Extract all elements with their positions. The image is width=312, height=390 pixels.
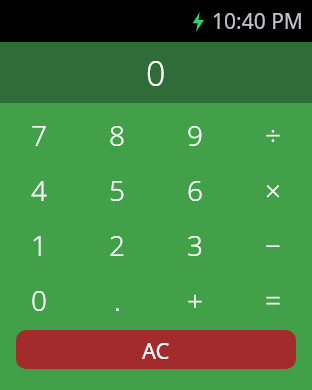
button[interactable]: 0 (0, 42, 312, 103)
staticText: 5 (109, 171, 125, 209)
button[interactable]: ÷ (234, 107, 312, 162)
button[interactable]: − (234, 217, 312, 272)
button[interactable]: 9 (156, 107, 234, 162)
staticText: = (265, 281, 281, 319)
staticText: 0 (31, 281, 47, 319)
staticText: 2 (109, 226, 125, 264)
staticText: + (187, 281, 203, 319)
staticText: 8 (109, 116, 125, 154)
staticText: 3 (187, 226, 203, 264)
button[interactable]: AC (16, 330, 296, 369)
button[interactable]: 6 (156, 162, 234, 217)
button[interactable]: . (78, 272, 156, 327)
staticText: 6 (187, 171, 203, 209)
staticText: 0 (146, 50, 166, 96)
button[interactable]: 3 (156, 217, 234, 272)
staticText: 4 (31, 171, 47, 209)
staticText: ÷ (265, 116, 281, 154)
button[interactable]: = (234, 272, 312, 327)
button[interactable]: + (156, 272, 234, 327)
staticText: 9 (187, 116, 203, 154)
button[interactable]: 5 (78, 162, 156, 217)
staticText: . (114, 281, 121, 319)
staticText: 7 (31, 116, 47, 154)
button[interactable]: 7 (0, 107, 78, 162)
button[interactable]: 4 (0, 162, 78, 217)
button[interactable]: 1 (0, 217, 78, 272)
staticText: × (265, 171, 281, 209)
staticText: − (265, 226, 281, 264)
button[interactable]: × (234, 162, 312, 217)
staticText: AC (142, 335, 170, 365)
button[interactable]: 0 (0, 272, 78, 327)
staticText: 10:40 PM (212, 7, 303, 36)
button[interactable]: 8 (78, 107, 156, 162)
button[interactable]: 2 (78, 217, 156, 272)
staticText: 1 (31, 226, 47, 264)
